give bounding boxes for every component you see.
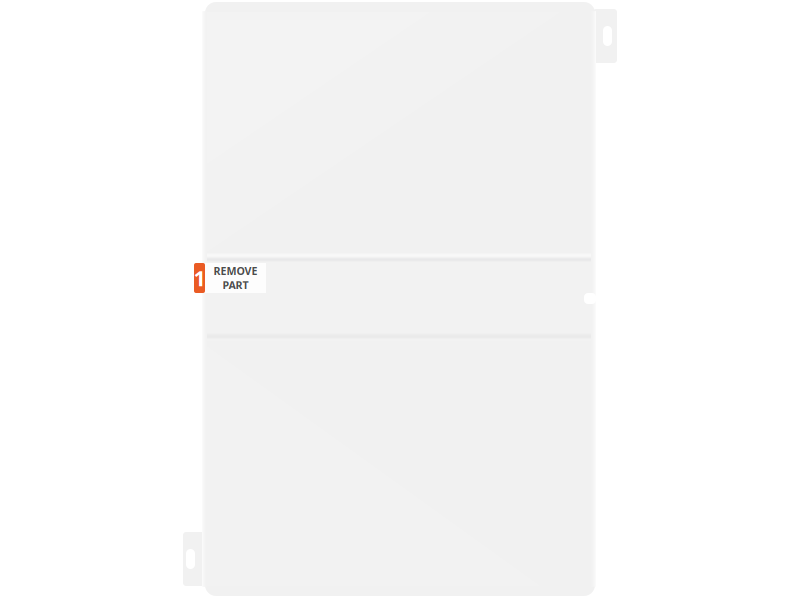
staticText: 1 bbox=[193, 264, 205, 292]
staticText: PART bbox=[222, 278, 248, 292]
button[interactable]: Step 1 — remove part bbox=[194, 263, 266, 293]
staticText: REMOVE bbox=[213, 264, 257, 278]
